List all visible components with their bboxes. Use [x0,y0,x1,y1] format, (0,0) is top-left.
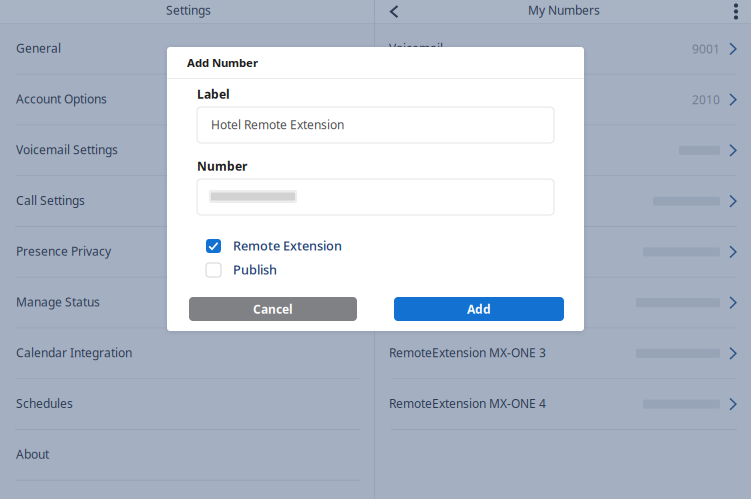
staticText: My Numbers [528,2,600,18]
button[interactable]: Schedules [0,379,375,430]
staticText: RemoteExtension MX-ONE 3 [389,344,546,361]
staticText: Number [197,158,247,174]
button[interactable]: RemoteExtension MX-ONE [375,176,751,227]
button[interactable]: RemoteExtension MX-ONE 4 [375,379,751,430]
staticText: Voicemail Settings [16,141,118,158]
button[interactable]: Calendar Integration [0,328,375,379]
staticText: Manage Status [16,294,100,310]
staticText: Mobile [389,141,427,158]
staticText: General [16,40,61,56]
button[interactable]: Voicemail Settings [0,125,375,176]
staticText: Call Settings [16,192,85,208]
button[interactable]: Account Options [0,75,375,126]
button[interactable]: RemoteExtension MX-ONE 3 [375,328,751,379]
staticText: Account Options [16,91,107,107]
button[interactable]: Call Settings [0,176,375,227]
button[interactable]: Publish [206,263,406,278]
staticText: Publish [233,261,277,278]
staticText: Label [197,86,230,102]
button[interactable]: More options [725,0,747,23]
button[interactable]: Add [394,297,564,321]
button[interactable]: Remote Extension [206,239,406,254]
button[interactable]: Back [381,0,407,23]
button[interactable]: Mobile Extension [375,75,751,126]
staticText: Mobile Extension [389,91,484,107]
staticText: Cancel [253,301,293,317]
button[interactable]: Voicemail [375,24,751,75]
staticText: Settings [166,2,211,18]
button[interactable]: Mobile [375,125,751,176]
staticText: Add Number [187,55,258,70]
staticText: Remote Extension [233,237,342,254]
staticText: RemoteExtension MX-ONE 4 [389,395,546,411]
staticText: Add [467,301,491,317]
button[interactable]: Cancel [189,297,357,321]
button[interactable]: RemoteExtension Hotel [375,227,751,278]
button[interactable]: About [0,430,375,481]
staticText: Voicemail [389,40,443,56]
button[interactable]: General [0,24,375,75]
button[interactable]: Manage Status [0,278,375,329]
staticText: About [16,446,49,462]
staticText: Schedules [16,395,73,411]
button[interactable]: RemoteExtension MX-ONE 2 [375,278,751,329]
staticText: Presence Privacy [16,243,111,259]
staticText: Hotel Remote Extension [211,116,344,133]
staticText: RemoteExtension MX-ONE 2 [389,294,546,310]
staticText: 2010 [692,91,720,108]
button[interactable]: Presence Privacy [0,227,375,278]
staticText: Calendar Integration [16,344,132,361]
staticText: 9001 [692,41,720,57]
